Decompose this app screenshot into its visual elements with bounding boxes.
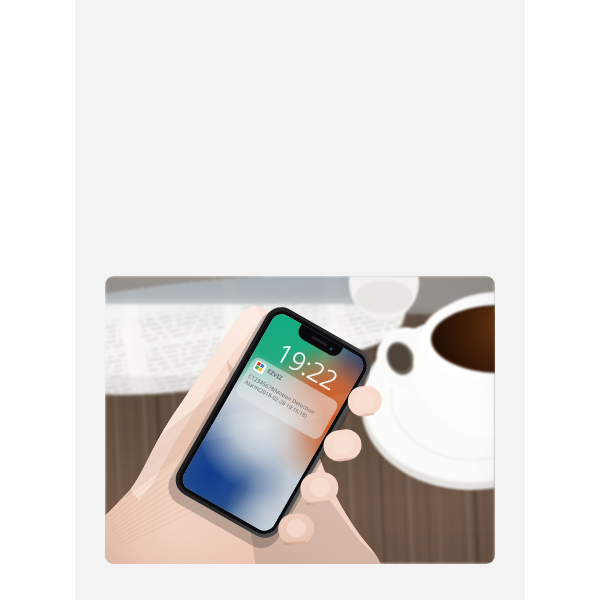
button[interactable]: Product photo: hand holding phone beside… [0,0,600,600]
